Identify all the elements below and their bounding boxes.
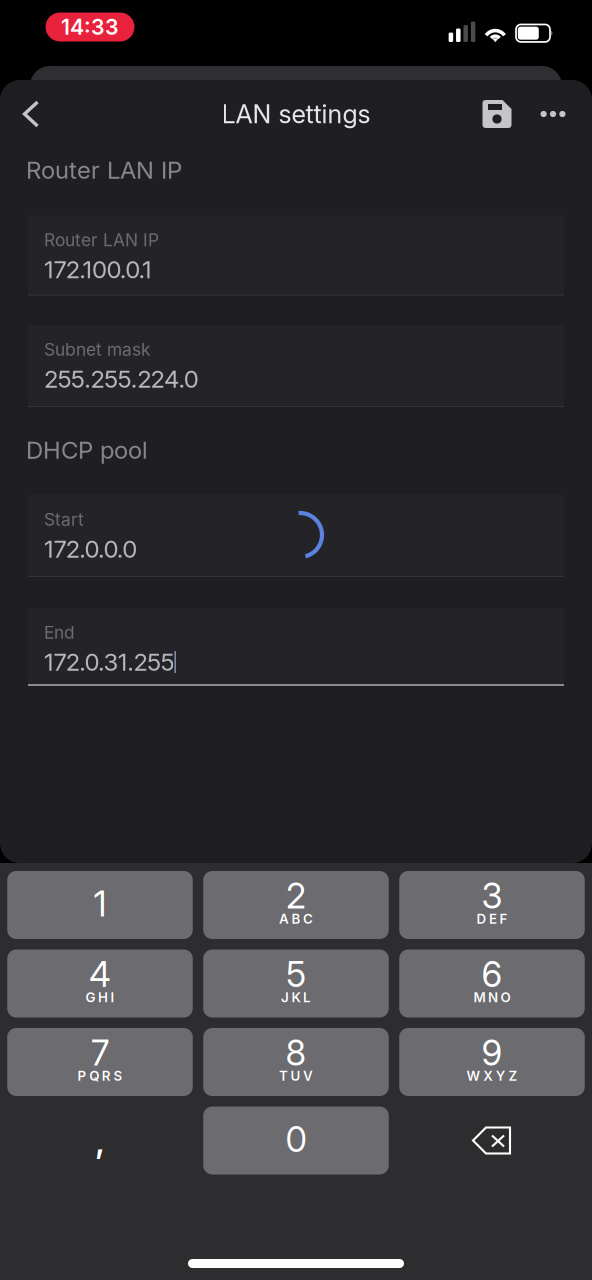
staticText: E — [489, 911, 497, 927]
staticText: R — [102, 1068, 111, 1084]
button[interactable]: 14:33 — [45, 12, 134, 41]
button[interactable]: 4 — [7, 949, 193, 1017]
staticText: Subnet mask — [44, 339, 151, 360]
staticText: W — [467, 1068, 481, 1084]
button[interactable]: Subnet mask — [28, 325, 564, 407]
staticText: X — [483, 1068, 493, 1084]
staticText: 172.100.0.1 — [44, 255, 152, 284]
staticText: F — [500, 911, 508, 927]
staticText: J — [281, 989, 289, 1005]
staticText: 5 — [286, 953, 306, 995]
staticText: 255.255.224.0 — [44, 364, 199, 393]
staticText: V — [303, 1068, 313, 1084]
staticText: LAN settings — [221, 99, 370, 129]
staticText: 9 — [481, 1032, 502, 1074]
staticText: U — [290, 1068, 300, 1084]
staticText: L — [303, 989, 311, 1005]
button[interactable]: 5 — [203, 949, 389, 1017]
staticText: End — [44, 622, 75, 643]
staticText: B — [291, 911, 300, 927]
staticText: Z — [508, 1068, 517, 1084]
staticText: Start — [44, 509, 84, 530]
staticText: 172.0.31.255 — [44, 647, 174, 676]
staticText: O — [501, 989, 511, 1005]
staticText: 172.0.0.0 — [44, 534, 137, 563]
staticText: Y — [496, 1068, 506, 1084]
button[interactable]: 1 — [7, 871, 193, 939]
staticText: 7 — [91, 1032, 109, 1074]
button[interactable]: 0 — [203, 1106, 389, 1174]
button[interactable]: 8 — [203, 1028, 389, 1096]
button[interactable]: , — [7, 1106, 193, 1174]
button[interactable]: Router LAN IP — [28, 215, 564, 295]
staticText: K — [291, 989, 300, 1005]
button[interactable]: 3 — [399, 871, 585, 939]
staticText: 1 — [93, 883, 106, 925]
staticText: I — [111, 989, 115, 1005]
staticText: 2 — [286, 875, 306, 917]
staticText: DHCP pool — [26, 435, 148, 464]
button[interactable]: 6 — [399, 949, 585, 1017]
button[interactable]: End — [28, 608, 564, 686]
staticText: T — [279, 1068, 288, 1084]
button[interactable]: 9 — [399, 1028, 585, 1096]
staticText: A — [279, 911, 289, 927]
staticText: 0 — [285, 1118, 306, 1160]
staticText: Router LAN IP — [26, 155, 182, 184]
staticText: P — [78, 1068, 87, 1084]
staticText: S — [113, 1068, 122, 1084]
button[interactable]: More options — [526, 80, 580, 148]
staticText: 4 — [89, 953, 111, 995]
staticText: Q — [89, 1068, 99, 1084]
staticText: 14:33 — [61, 14, 119, 40]
staticText: C — [303, 911, 313, 927]
button[interactable]: 7 — [7, 1028, 193, 1096]
button[interactable]: Back — [1, 80, 61, 148]
staticText: M — [473, 989, 485, 1005]
staticText: Router LAN IP — [44, 229, 159, 250]
button[interactable]: Save — [468, 80, 526, 148]
staticText: 6 — [481, 953, 502, 995]
staticText: G — [85, 989, 95, 1005]
button[interactable]: Delete — [399, 1106, 585, 1174]
staticText: , — [95, 1119, 104, 1161]
staticText: H — [98, 989, 108, 1005]
staticText: 3 — [481, 875, 502, 917]
staticText: N — [488, 989, 498, 1005]
button[interactable]: 2 — [203, 871, 389, 939]
button[interactable]: Start — [28, 495, 564, 577]
staticText: D — [476, 911, 486, 927]
staticText: 8 — [285, 1032, 306, 1074]
